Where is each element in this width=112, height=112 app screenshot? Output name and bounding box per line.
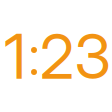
staticText: 1 bbox=[4, 19, 26, 94]
button[interactable]: Timer 1:23 bbox=[0, 0, 112, 112]
staticText: 23 bbox=[40, 19, 111, 94]
